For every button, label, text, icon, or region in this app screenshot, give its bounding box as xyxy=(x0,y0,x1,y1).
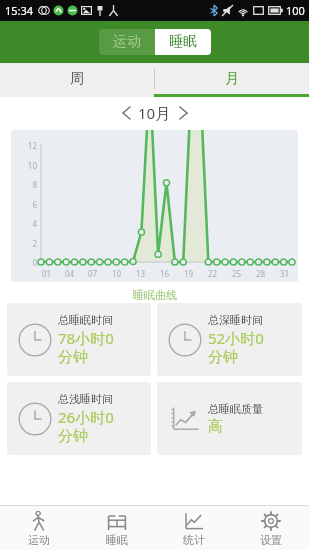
staticText: 26小时0 xyxy=(58,407,114,427)
staticText: 16 xyxy=(160,268,170,279)
button[interactable]: 运动 xyxy=(99,29,155,55)
staticText: 月 xyxy=(225,70,239,88)
button[interactable]: 总睡眠质量 xyxy=(157,382,302,455)
staticText: 100 xyxy=(286,3,305,18)
staticText: 22 xyxy=(208,268,218,279)
staticText: 10月 xyxy=(138,103,171,123)
staticText: 28 xyxy=(256,268,266,279)
button[interactable]: 总深睡时间 xyxy=(157,303,302,376)
button[interactable]: Next month xyxy=(174,104,192,122)
staticText: 0 xyxy=(11,257,37,268)
staticText: 分钟 xyxy=(58,427,88,446)
staticText: 运动 xyxy=(28,533,50,547)
staticText: 52小时0 xyxy=(208,328,264,348)
button[interactable]: 月 xyxy=(155,63,309,94)
staticText: 04 xyxy=(65,268,75,279)
staticText: 设置 xyxy=(260,533,282,547)
staticText: 10 xyxy=(11,160,37,171)
staticText: 01 xyxy=(42,268,52,279)
staticText: 12 xyxy=(11,140,37,151)
staticText: 15:34 xyxy=(5,3,34,18)
staticText: 07 xyxy=(88,268,98,279)
button[interactable]: Previous month xyxy=(117,104,135,122)
staticText: 19 xyxy=(184,268,194,279)
staticText: 4 xyxy=(11,218,37,229)
staticText: 78小时0 xyxy=(58,328,114,348)
staticText: 分钟 xyxy=(58,348,88,367)
button[interactable]: 睡眠 xyxy=(155,29,211,55)
staticText: 睡眠 xyxy=(106,533,128,547)
staticText: 10 xyxy=(112,268,122,279)
staticText: 周 xyxy=(70,70,84,88)
staticText: 13 xyxy=(136,268,146,279)
staticText: 睡眠 xyxy=(169,33,197,51)
button[interactable]: 睡眠 xyxy=(78,506,155,550)
staticText: 睡眠曲线 xyxy=(133,288,177,302)
staticText: 总浅睡时间 xyxy=(58,392,113,406)
button[interactable]: 统计 xyxy=(155,506,232,550)
staticText: 6 xyxy=(11,199,37,210)
staticText: 分钟 xyxy=(208,348,238,367)
button[interactable]: 总睡眠时间 xyxy=(7,303,151,376)
button[interactable]: 总浅睡时间 xyxy=(7,382,151,455)
staticText: 25 xyxy=(232,268,242,279)
staticText: 运动 xyxy=(113,33,141,51)
staticText: 总睡眠质量 xyxy=(208,402,263,416)
staticText: 总深睡时间 xyxy=(208,313,263,327)
button[interactable]: 运动 xyxy=(0,506,78,550)
staticText: 高 xyxy=(208,417,223,436)
button[interactable]: 设置 xyxy=(232,506,309,550)
staticText: 统计 xyxy=(183,533,205,547)
staticText: 31 xyxy=(280,268,290,279)
staticText: 2 xyxy=(11,238,37,249)
staticText: 8 xyxy=(11,179,37,190)
button[interactable]: 周 xyxy=(0,63,154,94)
staticText: 总睡眠时间 xyxy=(58,313,113,327)
